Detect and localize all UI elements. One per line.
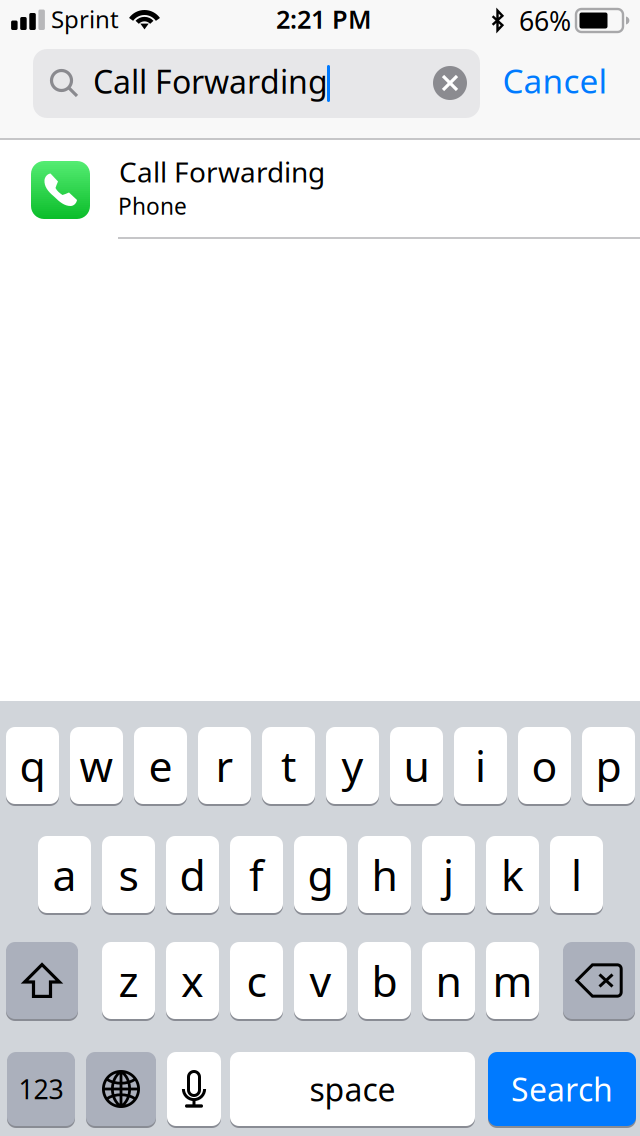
- staticText: c: [246, 952, 266, 1009]
- button[interactable]: Clear text: [426, 59, 474, 107]
- button[interactable]: n: [422, 942, 475, 1021]
- staticText: Phone: [118, 191, 187, 221]
- staticText: 66%: [519, 3, 571, 38]
- staticText: Cancel: [502, 58, 607, 103]
- button[interactable]: m: [486, 942, 539, 1021]
- staticText: u: [403, 737, 429, 794]
- staticText: j: [443, 846, 454, 903]
- button[interactable]: i: [454, 727, 507, 806]
- staticText: s: [118, 846, 138, 903]
- staticText: b: [371, 952, 397, 1009]
- button[interactable]: q: [6, 727, 59, 806]
- staticText: o: [531, 737, 557, 794]
- button[interactable]: v: [294, 942, 347, 1021]
- staticText: p: [595, 737, 621, 794]
- button[interactable]: o: [518, 727, 571, 806]
- staticText: x: [181, 952, 204, 1009]
- button[interactable]: Delete: [563, 942, 635, 1021]
- staticText: Search: [511, 1068, 613, 1110]
- staticText: z: [118, 952, 138, 1009]
- button[interactable]: w: [70, 727, 123, 806]
- staticText: d: [179, 846, 205, 903]
- button[interactable]: k: [486, 836, 539, 915]
- button[interactable]: j: [422, 836, 475, 915]
- button[interactable]: b: [358, 942, 411, 1021]
- staticText: Call Forwarding: [93, 60, 328, 102]
- button[interactable]: Cancel: [480, 46, 630, 115]
- button[interactable]: z: [102, 942, 155, 1021]
- button[interactable]: g: [294, 836, 347, 915]
- button[interactable]: u: [390, 727, 443, 806]
- button[interactable]: x: [166, 942, 219, 1021]
- staticText: i: [475, 737, 486, 794]
- staticText: n: [435, 952, 461, 1009]
- staticText: k: [501, 846, 524, 903]
- button[interactable]: d: [166, 836, 219, 915]
- staticText: Call Forwarding: [119, 153, 325, 190]
- button[interactable]: r: [198, 727, 251, 806]
- staticText: e: [148, 737, 172, 794]
- staticText: 2:21 PM: [276, 2, 372, 36]
- button[interactable]: h: [358, 836, 411, 915]
- staticText: a: [52, 846, 76, 903]
- staticText: q: [19, 737, 45, 794]
- button[interactable]: Call Forwarding: [0, 140, 640, 239]
- staticText: t: [281, 737, 296, 794]
- staticText: v: [309, 952, 331, 1009]
- button[interactable]: e: [134, 727, 187, 806]
- staticText: g: [307, 846, 333, 903]
- button[interactable]: Search: [488, 1052, 636, 1128]
- button[interactable]: s: [102, 836, 155, 915]
- button[interactable]: f: [230, 836, 283, 915]
- button[interactable]: l: [550, 836, 603, 915]
- staticText: w: [79, 737, 113, 794]
- staticText: h: [371, 846, 397, 903]
- staticText: f: [249, 846, 264, 903]
- staticText: Sprint: [51, 3, 119, 35]
- button[interactable]: Next keyboard: [86, 1052, 156, 1128]
- button[interactable]: Dictate: [167, 1052, 221, 1128]
- button[interactable]: c: [230, 942, 283, 1021]
- button[interactable]: 123: [7, 1052, 75, 1128]
- staticText: y: [341, 737, 363, 794]
- button[interactable]: space: [230, 1052, 475, 1128]
- staticText: r: [215, 737, 233, 794]
- button[interactable]: p: [582, 727, 635, 806]
- staticText: space: [309, 1068, 395, 1110]
- staticText: l: [571, 846, 582, 903]
- button[interactable]: Shift: [6, 942, 78, 1021]
- staticText: m: [492, 952, 532, 1009]
- button[interactable]: t: [262, 727, 315, 806]
- button[interactable]: y: [326, 727, 379, 806]
- staticText: 123: [18, 1071, 63, 1107]
- button[interactable]: a: [38, 836, 91, 915]
